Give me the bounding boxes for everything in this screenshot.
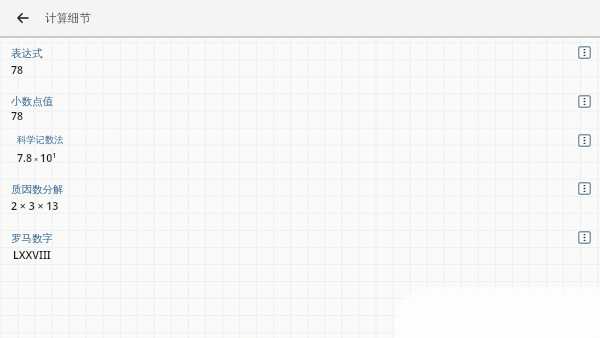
staticText: 科学记数法 [17, 134, 64, 146]
button[interactable]: More options [570, 126, 598, 154]
staticText: 7.8 × 101 [17, 150, 57, 165]
button[interactable] [0, 40, 600, 84]
staticText: 2 × 3 × 13 [11, 199, 59, 213]
button[interactable]: Back [5, 0, 41, 36]
staticText: LXXVIII [13, 248, 51, 262]
staticText: 质因数分解 [11, 183, 64, 196]
button[interactable]: More options [570, 223, 598, 251]
staticText: 表达式 [11, 47, 43, 60]
staticText: 小数点值 [11, 95, 53, 108]
staticText: 计算细节 [45, 11, 91, 25]
button[interactable]: More options [570, 87, 598, 115]
staticText: 罗马数字 [11, 232, 53, 245]
staticText: 78 [11, 109, 24, 123]
staticText: 78 [11, 63, 24, 77]
button[interactable]: More options [570, 174, 598, 202]
button[interactable]: More options [570, 38, 598, 66]
